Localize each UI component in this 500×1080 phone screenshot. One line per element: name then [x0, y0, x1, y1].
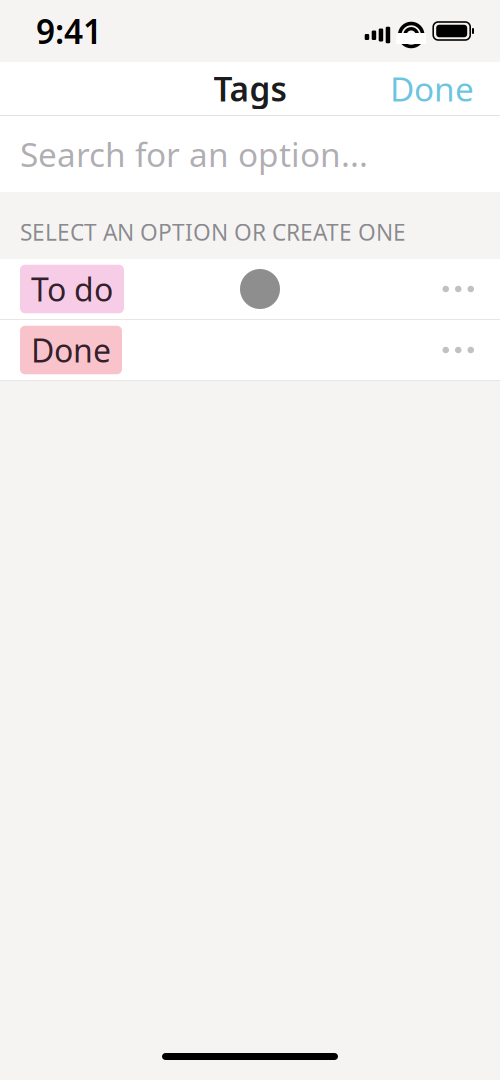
staticText: Done	[31, 329, 111, 371]
button[interactable]: Search for an option...	[0, 116, 500, 192]
staticText: Search for an option...	[20, 132, 368, 176]
staticText: To do	[31, 268, 113, 310]
staticText: Done	[390, 66, 474, 111]
staticText: 9:41	[36, 9, 102, 53]
staticText: SELECT AN OPTION OR CREATE ONE	[20, 217, 406, 247]
button[interactable]: To do	[0, 259, 500, 319]
button[interactable]: Done	[376, 56, 488, 121]
button[interactable]: Done	[0, 320, 500, 380]
staticText: Tags	[213, 66, 286, 111]
